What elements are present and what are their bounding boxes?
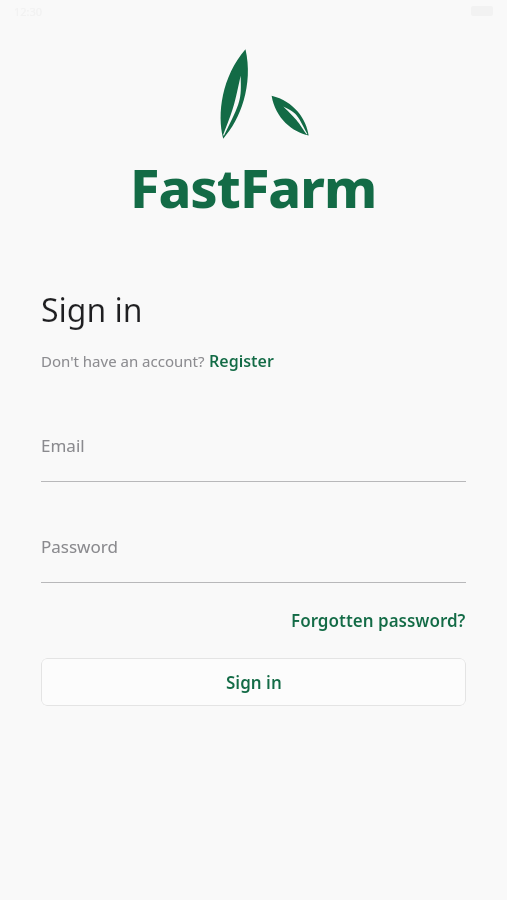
staticText: Forgotten password? bbox=[291, 609, 466, 632]
staticText: Sign in bbox=[41, 288, 143, 332]
button[interactable]: Sign in bbox=[41, 658, 466, 706]
staticText: Password bbox=[41, 535, 118, 558]
button[interactable]: Password bbox=[41, 535, 466, 583]
staticText: Don't have an account? bbox=[41, 351, 209, 371]
staticText: Sign in bbox=[226, 671, 282, 694]
button[interactable]: Forgotten password? bbox=[291, 609, 466, 632]
staticText: FastFarm bbox=[130, 150, 377, 224]
staticText: Register bbox=[209, 350, 274, 372]
button[interactable]: Register bbox=[209, 350, 274, 372]
staticText: Email bbox=[41, 434, 85, 457]
button[interactable]: Email bbox=[41, 434, 466, 482]
